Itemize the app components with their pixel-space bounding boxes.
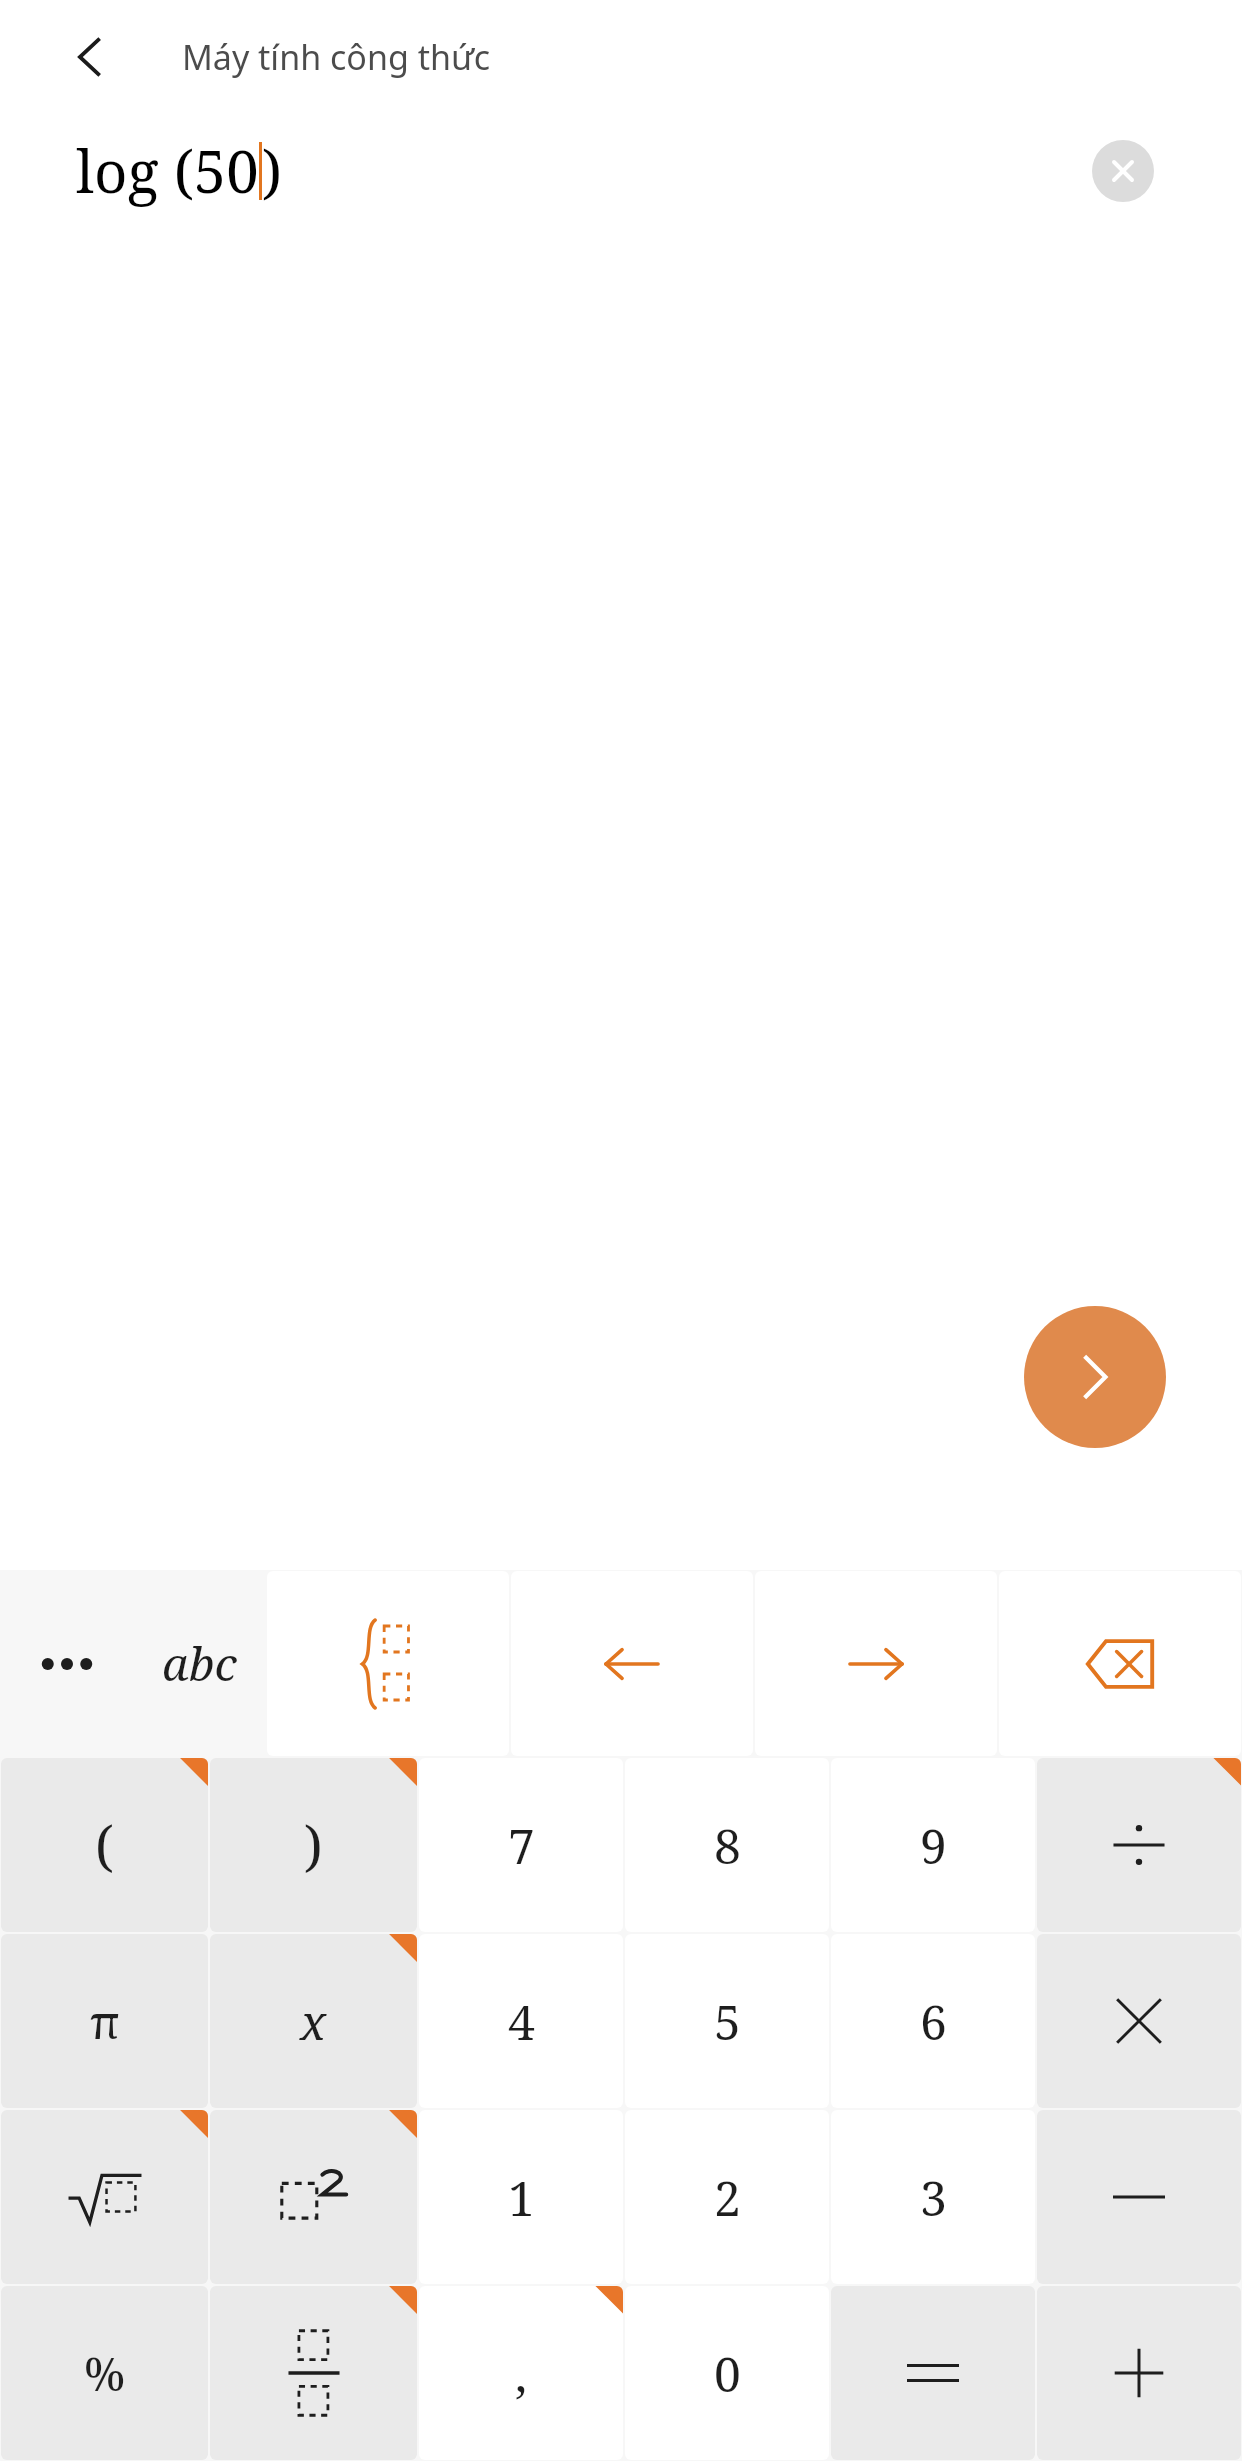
- button[interactable]: Squared: [210, 2110, 417, 2284]
- button[interactable]: Square root: [1, 2110, 208, 2284]
- staticText: abc: [162, 1632, 237, 1695]
- staticText: 5: [714, 1989, 741, 2054]
- staticText: 7: [508, 1813, 535, 1878]
- button[interactable]: Multiply: [1037, 1934, 1241, 2108]
- staticText: log (50: [76, 131, 259, 210]
- button[interactable]: Variable x: [210, 1934, 417, 2108]
- staticText: ): [262, 131, 283, 210]
- button[interactable]: Zero: [625, 2286, 829, 2460]
- button[interactable]: Clear expression: [1092, 140, 1154, 202]
- button[interactable]: Backspace: [999, 1571, 1241, 1756]
- button[interactable]: Plus: [1037, 2286, 1241, 2460]
- button[interactable]: Divide: [1037, 1758, 1241, 1932]
- button[interactable]: Calculate: [1024, 1306, 1166, 1448]
- button[interactable]: Six: [831, 1934, 1035, 2108]
- staticText: x: [300, 1989, 327, 2054]
- button[interactable]: Eight: [625, 1758, 829, 1932]
- button[interactable]: Move cursor left: [511, 1571, 753, 1756]
- button[interactable]: Two: [625, 2110, 829, 2284]
- button[interactable]: Equals: [831, 2286, 1035, 2460]
- button[interactable]: Percent: [1, 2286, 208, 2460]
- staticText: ,: [515, 2341, 528, 2406]
- button[interactable]: Five: [625, 1934, 829, 2108]
- button[interactable]: Pi: [1, 1934, 208, 2108]
- staticText: 3: [920, 2165, 947, 2230]
- button[interactable]: Three: [831, 2110, 1035, 2284]
- staticText: 9: [920, 1813, 947, 1878]
- staticText: 8: [714, 1813, 741, 1878]
- button[interactable]: Close paren: [210, 1758, 417, 1932]
- button[interactable]: Comma: [419, 2286, 623, 2460]
- staticText: 4: [508, 1989, 535, 2054]
- button[interactable]: Seven: [419, 1758, 623, 1932]
- button[interactable]: More options: [0, 1570, 133, 1757]
- button[interactable]: Nine: [831, 1758, 1035, 1932]
- staticText: 1: [508, 2165, 535, 2230]
- button[interactable]: Insert cases: [267, 1571, 509, 1756]
- staticText: 2: [714, 2165, 741, 2230]
- button[interactable]: Fraction: [210, 2286, 417, 2460]
- button[interactable]: Open paren: [1, 1758, 208, 1932]
- staticText: (: [95, 1808, 114, 1882]
- staticText: π: [90, 1990, 120, 2053]
- staticText: ): [304, 1808, 323, 1882]
- staticText: 0: [714, 2341, 741, 2406]
- staticText: %: [84, 2342, 126, 2405]
- staticText: Máy tính công thức: [182, 34, 491, 80]
- button[interactable]: Back: [52, 19, 128, 95]
- button[interactable]: One: [419, 2110, 623, 2284]
- button[interactable]: Move cursor right: [755, 1571, 997, 1756]
- button[interactable]: Minus: [1037, 2110, 1241, 2284]
- staticText: 6: [920, 1989, 947, 2054]
- button[interactable]: abc: [133, 1570, 266, 1757]
- button[interactable]: Four: [419, 1934, 623, 2108]
